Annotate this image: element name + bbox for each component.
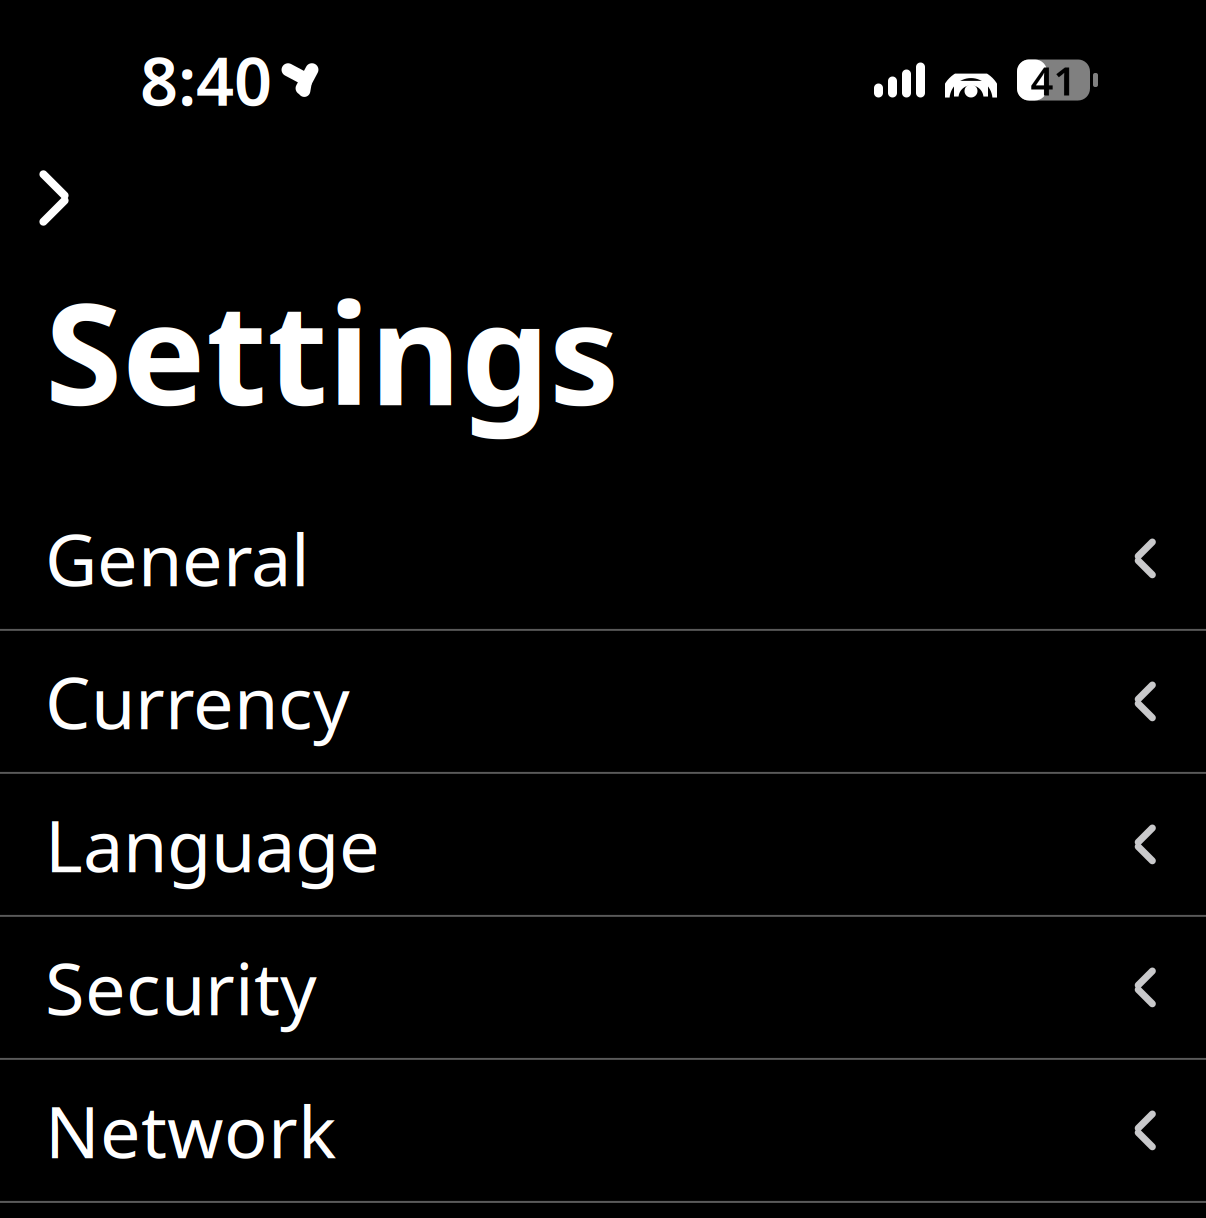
staticText: 8:40 (140, 36, 272, 124)
staticText: Currency (45, 654, 350, 749)
button[interactable]: Network (0, 1060, 1206, 1201)
button[interactable]: Currency (0, 631, 1206, 772)
staticText: Security (45, 940, 317, 1035)
button[interactable]: General (0, 488, 1206, 629)
button[interactable]: Security (0, 917, 1206, 1058)
staticText: General (45, 511, 310, 606)
button[interactable]: Back (14, 158, 94, 238)
staticText: 41 (1030, 53, 1076, 106)
staticText: Network (45, 1083, 336, 1178)
staticText: Settings (45, 258, 619, 444)
staticText: Language (45, 797, 380, 892)
button[interactable]: Language (0, 774, 1206, 915)
